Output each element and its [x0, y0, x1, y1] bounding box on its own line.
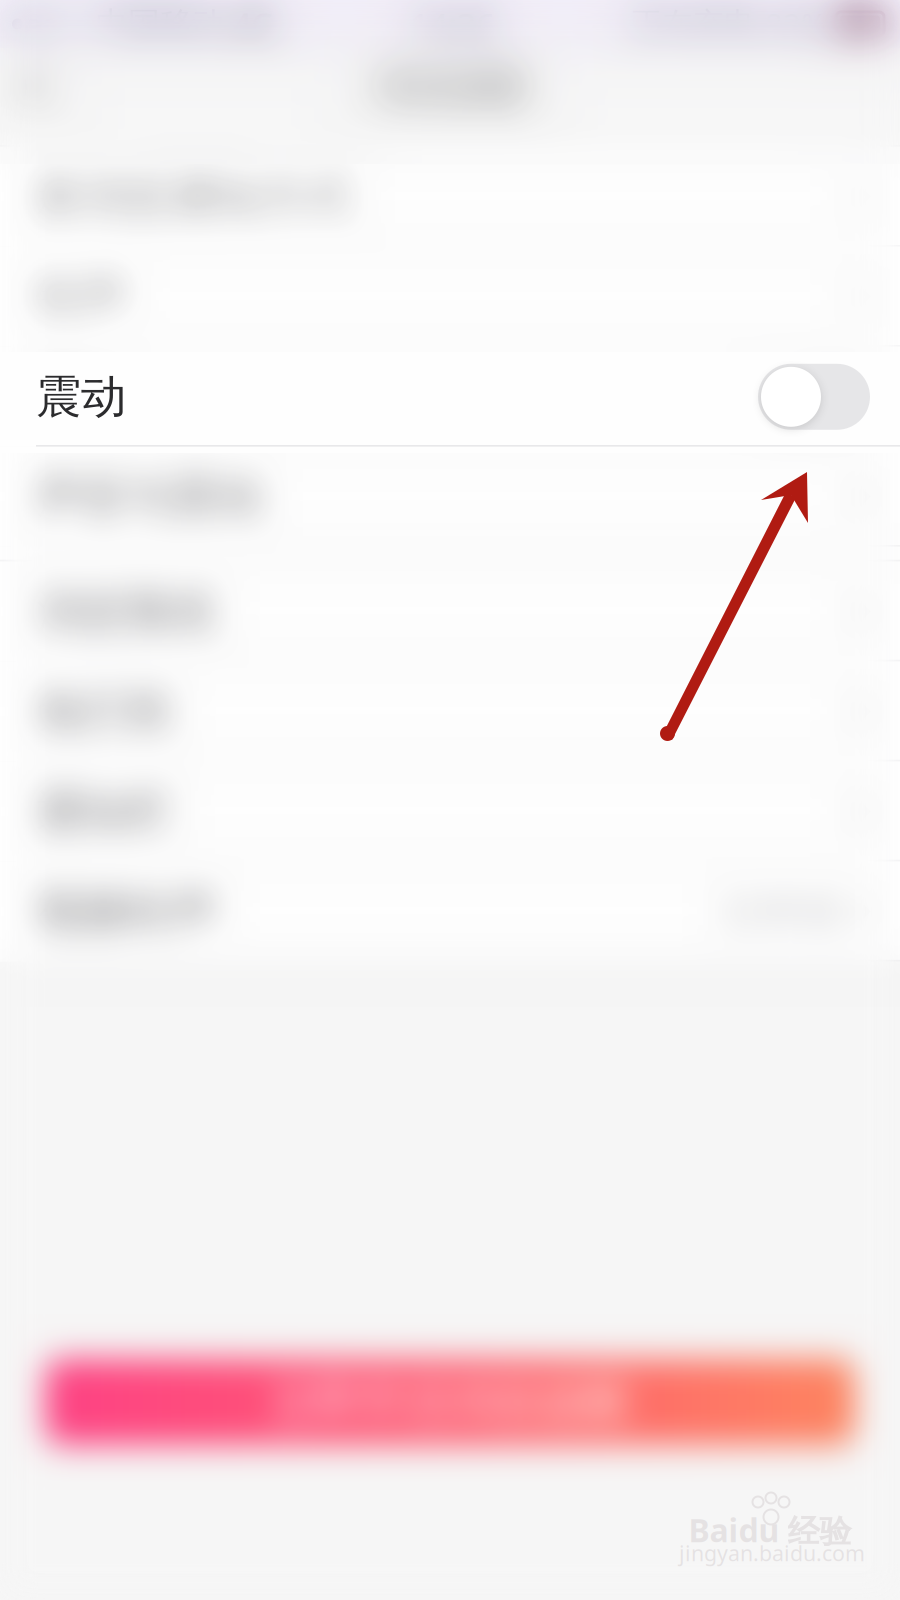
staticText: 震动: [36, 369, 126, 425]
staticText: 视频铃声: [36, 884, 216, 939]
staticText: Baidu 经验: [688, 1509, 851, 1551]
staticText: 中国移动: [96, 4, 224, 44]
button[interactable]: 震动: [0, 347, 900, 447]
staticText: 免打扰: [36, 684, 171, 739]
button[interactable]: 免打扰: [0, 662, 900, 762]
button[interactable]: 铃声: [0, 247, 900, 347]
staticText: 声音与震动: [36, 469, 261, 525]
staticText: 铃声: [36, 269, 126, 325]
staticText: 消息提醒: [372, 63, 528, 111]
button[interactable]: 通知栏: [0, 762, 900, 862]
button[interactable]: 声音与震动: [0, 447, 900, 547]
button[interactable]: 立即开启消息提醒: [45, 1359, 855, 1445]
button[interactable]: 消息预览: [0, 562, 900, 662]
staticText: jingyan.baidu.com: [679, 1539, 865, 1567]
staticText: 立即开启消息提醒: [270, 1374, 630, 1430]
button[interactable]: Back: [0, 46, 77, 128]
staticText: 新消息通知方式: [36, 169, 351, 225]
button[interactable]: 新消息通知方式: [0, 147, 900, 247]
staticText: 正在充电: [631, 5, 755, 43]
staticText: 82%: [765, 4, 826, 44]
button[interactable]: 视频铃声: [0, 862, 900, 962]
staticText: 通知栏: [36, 784, 171, 839]
staticText: 消息预览: [36, 584, 216, 639]
